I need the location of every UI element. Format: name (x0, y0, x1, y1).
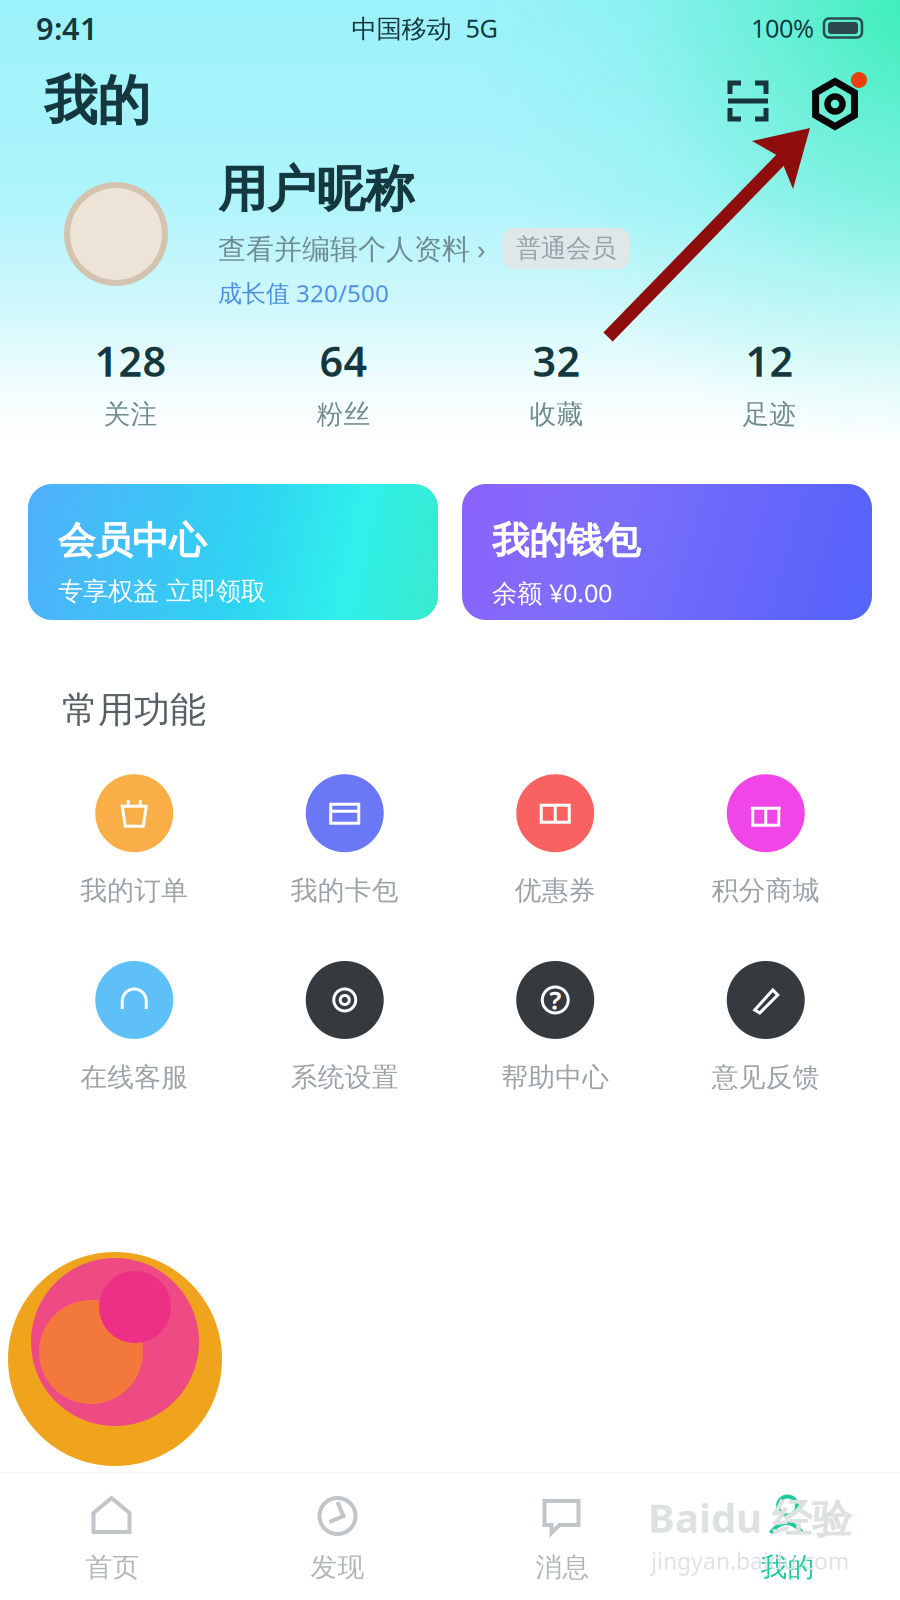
button[interactable]: 64 (237, 322, 450, 442)
button[interactable]: 会员中心 (28, 484, 438, 620)
button[interactable]: 系统设置 (239, 961, 450, 1094)
button[interactable]: Avatar (60, 178, 172, 290)
staticText: 足迹 (742, 398, 796, 431)
staticText: 常用功能 (62, 688, 206, 732)
staticText: jingyan.baidu.com (651, 1546, 849, 1576)
staticText: 会员中心 (58, 518, 206, 564)
button[interactable]: 我的订单 (29, 774, 239, 907)
staticText: 12 (745, 333, 793, 388)
staticText: ? (549, 983, 561, 1017)
button[interactable]: 发现 (225, 1473, 450, 1600)
button[interactable]: Promotion (8, 1252, 222, 1466)
staticText: 9:41 (36, 8, 98, 48)
staticText: 我的订单 (80, 874, 188, 907)
staticText: 64 (319, 333, 367, 388)
staticText: 帮助中心 (501, 1061, 609, 1094)
button[interactable]: 我的卡包 (239, 774, 450, 907)
staticText: 发现 (310, 1551, 364, 1584)
staticText: 成长值 320/500 (218, 277, 389, 309)
staticText: 在线客服 (80, 1061, 188, 1094)
staticText: 消息 (535, 1551, 589, 1584)
button[interactable]: 128 (24, 322, 237, 442)
staticText: 普通会员 (516, 233, 616, 264)
button[interactable]: 在线客服 (29, 961, 239, 1094)
staticText: 中国移动 5G (351, 11, 497, 45)
button[interactable]: 积分商城 (660, 774, 871, 907)
staticText: 专享权益 立即领取 (58, 576, 266, 607)
button[interactable]: 首页 (0, 1473, 225, 1600)
button[interactable]: ? (450, 961, 660, 1094)
button[interactable]: 意见反馈 (660, 961, 871, 1094)
staticText: 余额 ¥0.00 (492, 576, 612, 609)
staticText: 32 (532, 333, 580, 388)
button[interactable]: 32 (450, 322, 663, 442)
button[interactable]: 用户昵称 (218, 159, 630, 309)
button[interactable]: 优惠券 (450, 774, 660, 907)
button[interactable]: Settings (806, 69, 870, 133)
staticText: 系统设置 (291, 1061, 399, 1094)
staticText: 优惠券 (515, 874, 596, 907)
staticText: 粉丝 (316, 398, 370, 431)
staticText: 我的钱包 (492, 518, 640, 564)
staticText: 128 (94, 333, 166, 388)
staticText: 首页 (85, 1551, 139, 1584)
staticText: 积分商城 (712, 874, 820, 907)
button[interactable]: 12 (663, 322, 876, 442)
staticText: 收藏 (529, 398, 583, 431)
staticText: 意见反馈 (712, 1061, 820, 1094)
staticText: 我的 (44, 68, 150, 134)
staticText: 我的卡包 (291, 874, 399, 907)
staticText: Baidu 经验 (648, 1491, 852, 1544)
staticText: 我的 (760, 1551, 814, 1584)
staticText: 用户昵称 (218, 159, 414, 220)
button[interactable]: 消息 (450, 1473, 675, 1600)
staticText: 100% (751, 11, 814, 45)
staticText: 查看并编辑个人资料 › (218, 230, 486, 267)
staticText: 关注 (103, 398, 157, 431)
button[interactable]: Scan (720, 73, 776, 129)
button[interactable]: 我的 (675, 1473, 900, 1600)
button[interactable]: 我的钱包 (462, 484, 872, 620)
